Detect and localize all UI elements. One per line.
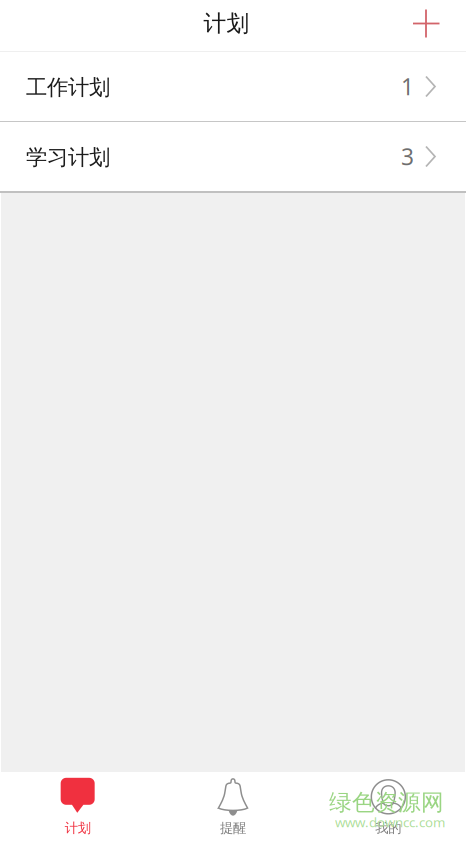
button[interactable]: 提醒 <box>155 772 311 841</box>
button[interactable]: 工作计划 <box>0 52 466 121</box>
button[interactable]: 我的 <box>311 772 466 841</box>
button[interactable]: 学习计划 <box>0 122 466 191</box>
staticText: 绿色资源网 <box>329 788 444 816</box>
staticText: 提醒 <box>220 820 246 836</box>
staticText: 3 <box>401 141 414 171</box>
staticText: 我的 <box>375 820 401 836</box>
staticText: 1 <box>401 71 414 101</box>
staticText: www.downcc.com <box>335 813 445 831</box>
staticText: 计划 <box>65 820 91 836</box>
staticText: 工作计划 <box>26 74 110 101</box>
staticText: 计划 <box>203 10 249 37</box>
staticText: 学习计划 <box>26 144 110 171</box>
button[interactable]: 新建计划 <box>413 2 466 48</box>
button[interactable]: 计划 <box>0 772 155 841</box>
